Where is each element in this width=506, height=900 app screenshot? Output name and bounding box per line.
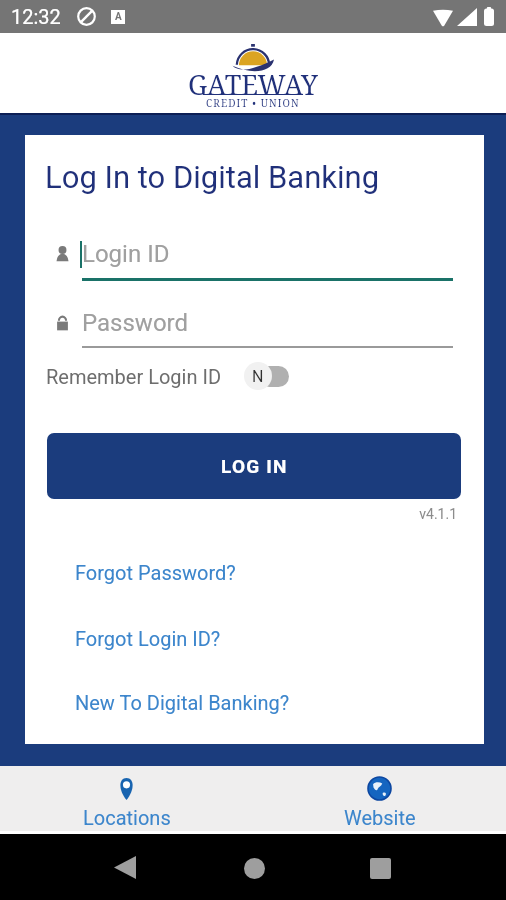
- button[interactable]: Back: [102, 844, 148, 890]
- staticText: Login ID: [82, 240, 170, 268]
- staticText: New To Digital Banking?: [75, 691, 290, 714]
- staticText: GATEWAY: [188, 66, 318, 103]
- button[interactable]: Recent apps: [357, 845, 403, 891]
- staticText: Website: [344, 806, 416, 829]
- staticText: CREDIT • UNION: [206, 96, 300, 110]
- button[interactable]: New To Digital Banking?: [25, 682, 484, 722]
- staticText: A: [115, 11, 122, 23]
- staticText: Forgot Login ID?: [75, 627, 221, 650]
- button[interactable]: Forgot Login ID?: [25, 618, 484, 658]
- staticText: LOG IN: [221, 455, 288, 477]
- button[interactable]: Forgot Password?: [25, 552, 484, 592]
- staticText: Locations: [83, 806, 171, 829]
- staticText: N: [252, 367, 264, 386]
- button[interactable]: Website: [253, 766, 506, 831]
- staticText: 12:32: [11, 5, 61, 28]
- button[interactable]: LOG IN: [47, 433, 461, 499]
- staticText: Password: [82, 309, 189, 337]
- button[interactable]: N: [244, 361, 289, 391]
- staticText: Forgot Password?: [75, 561, 236, 584]
- staticText: Log In to Digital Banking: [45, 159, 380, 195]
- staticText: v4.1.1: [25, 506, 457, 522]
- staticText: Remember Login ID: [46, 365, 222, 388]
- button[interactable]: Locations: [0, 766, 253, 831]
- button[interactable]: Home: [231, 845, 277, 891]
